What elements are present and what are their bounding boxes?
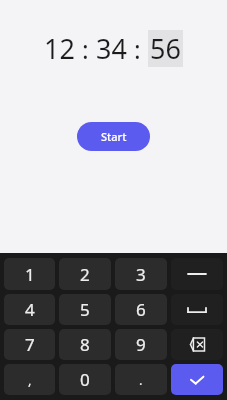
staticText: :	[82, 32, 89, 66]
button[interactable]: 9	[115, 329, 167, 360]
button[interactable]: ,	[4, 364, 55, 395]
staticText: 8	[80, 333, 90, 356]
staticText: Start	[101, 129, 127, 144]
staticText: 0	[80, 368, 90, 391]
staticText: 56	[150, 30, 181, 67]
button[interactable]: 6	[115, 294, 167, 325]
staticText: 12	[44, 30, 75, 67]
staticText: 5	[80, 298, 90, 321]
staticText: .	[139, 371, 143, 389]
button[interactable]: Minus	[171, 258, 223, 290]
staticText: ,	[28, 371, 32, 389]
staticText: 2	[80, 263, 90, 286]
staticText: 1	[25, 263, 35, 286]
staticText: 6	[136, 298, 146, 321]
button[interactable]: Enter	[171, 364, 223, 395]
staticText: 7	[25, 333, 35, 356]
button[interactable]: 8	[59, 329, 111, 360]
staticText: 34	[96, 30, 127, 67]
staticText: 4	[25, 298, 35, 321]
button[interactable]: Space	[171, 294, 223, 325]
button[interactable]: Backspace	[171, 329, 223, 360]
button[interactable]: 2	[59, 258, 111, 290]
button[interactable]: 0	[59, 364, 111, 395]
staticText: :	[134, 32, 141, 66]
staticText: 9	[136, 333, 146, 356]
button[interactable]: 4	[4, 294, 55, 325]
button[interactable]: Start	[77, 122, 150, 151]
staticText: 3	[136, 263, 146, 286]
button[interactable]: 1	[4, 258, 55, 290]
button[interactable]: .	[115, 364, 167, 395]
button[interactable]: 5	[59, 294, 111, 325]
button[interactable]: 3	[115, 258, 167, 290]
button[interactable]: 7	[4, 329, 55, 360]
